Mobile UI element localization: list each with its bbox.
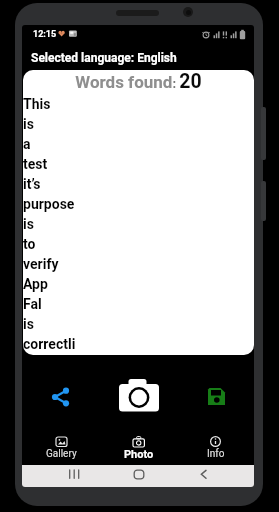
staticText: Selected language: English: [31, 51, 177, 65]
button[interactable]: Photo: [100, 435, 177, 465]
button[interactable]: Info: [177, 435, 254, 465]
button[interactable]: Gallery: [22, 435, 100, 465]
button[interactable]: [206, 386, 227, 407]
staticText: Photo: [124, 448, 154, 461]
staticText: This is a test it’s purpose is to verify…: [23, 96, 76, 352]
staticText: Info: [207, 448, 225, 460]
button[interactable]: [50, 385, 70, 407]
staticText: 12:15: [33, 29, 57, 40]
staticText: Words found: 20: [23, 70, 254, 93]
staticText: Gallery: [46, 448, 77, 460]
button[interactable]: [117, 377, 161, 413]
